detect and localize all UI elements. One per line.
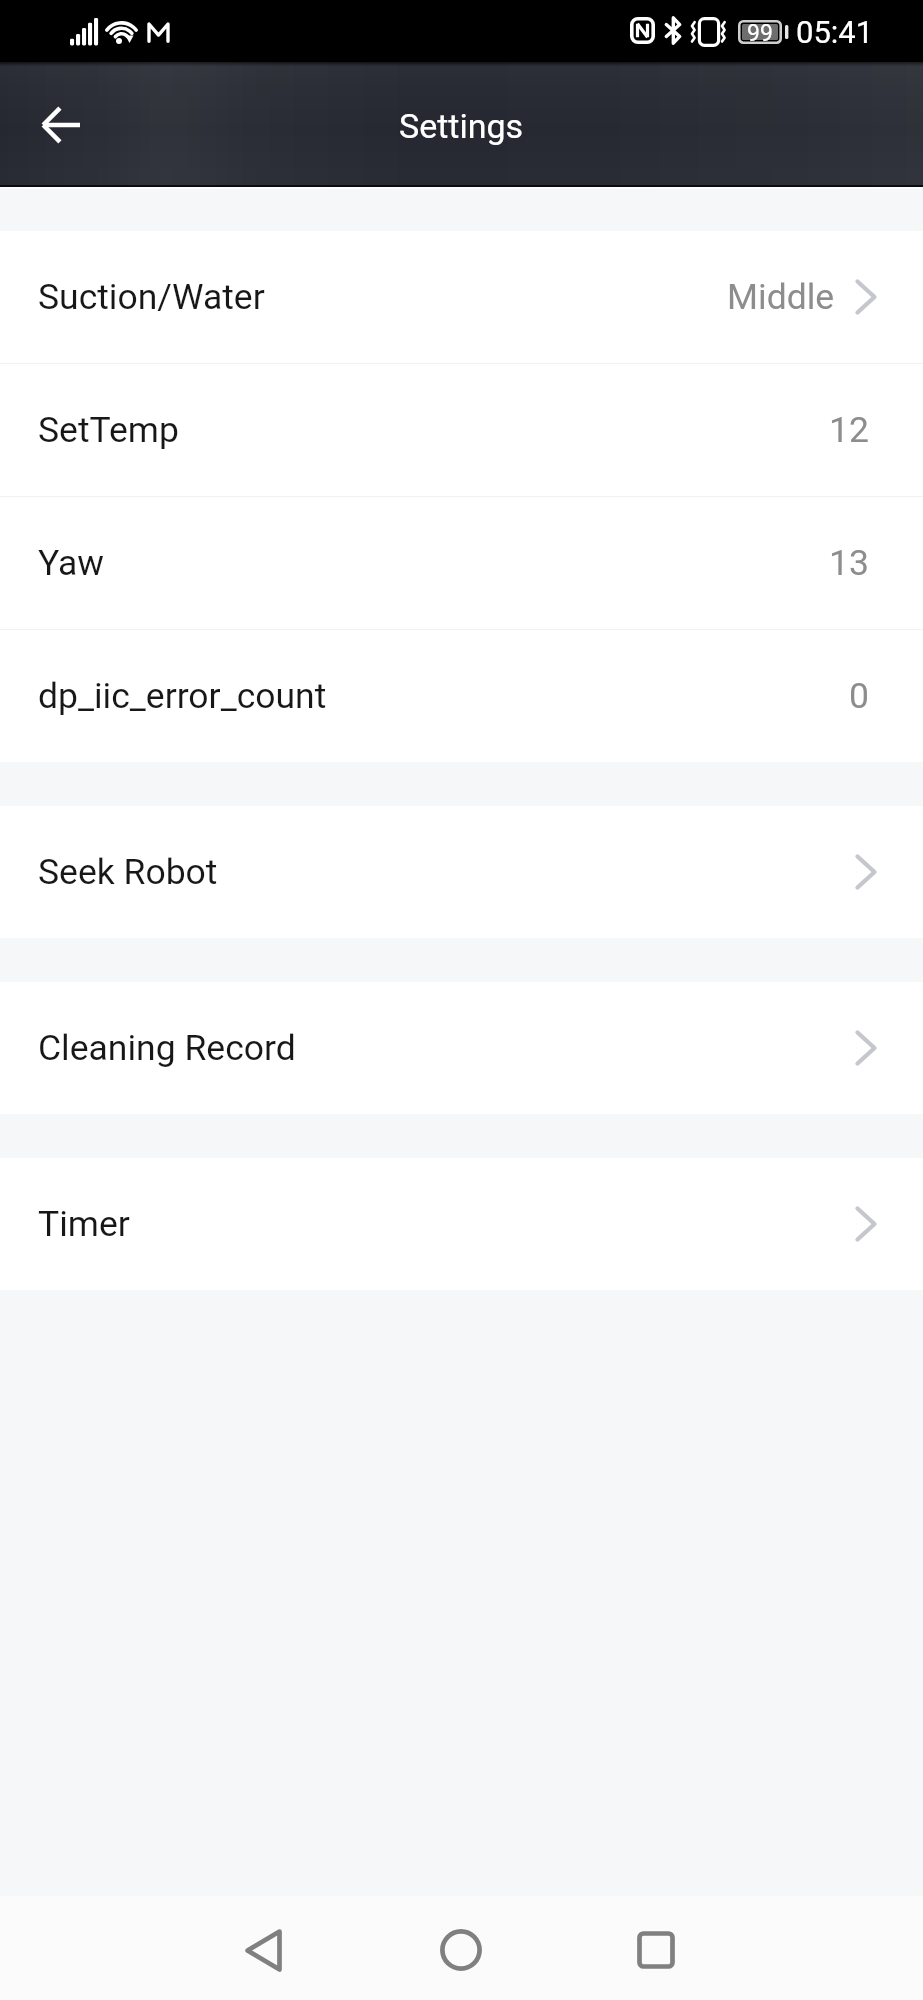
button[interactable]: Recents: [604, 1898, 708, 2000]
staticText: dp_iic_error_count: [38, 675, 327, 717]
button[interactable]: Seek Robot: [0, 806, 923, 938]
staticText: Seek Robot: [38, 851, 218, 893]
staticText: 05:41: [796, 14, 874, 50]
staticText: Cleaning Record: [38, 1027, 296, 1069]
staticText: 12: [829, 409, 869, 451]
button[interactable]: Cleaning Record: [0, 982, 923, 1114]
staticText: SetTemp: [38, 409, 179, 451]
staticText: Yaw: [38, 542, 105, 584]
button[interactable]: Home: [409, 1898, 513, 2000]
button[interactable]: SetTemp: [0, 364, 923, 496]
staticText: Settings: [399, 106, 524, 146]
button[interactable]: dp_iic_error_count: [0, 630, 923, 762]
staticText: 13: [829, 542, 869, 584]
button[interactable]: Suction/Water: [0, 231, 923, 363]
button[interactable]: Timer: [0, 1158, 923, 1290]
button[interactable]: Back: [211, 1898, 315, 2000]
button[interactable]: Yaw: [0, 497, 923, 629]
staticText: 99: [738, 20, 782, 47]
staticText: Suction/Water: [38, 276, 265, 318]
button[interactable]: Back: [21, 85, 101, 165]
staticText: Timer: [38, 1203, 130, 1245]
staticText: 0: [849, 675, 869, 717]
staticText: Middle: [727, 276, 835, 318]
